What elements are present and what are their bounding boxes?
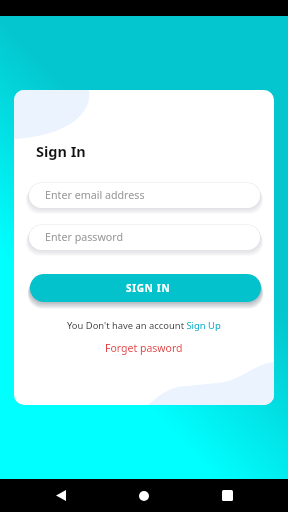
button[interactable]: SIGN IN xyxy=(30,274,261,302)
button[interactable]: You Don't have an account Sign Up xyxy=(67,319,221,332)
button[interactable]: Enter password xyxy=(29,225,260,250)
staticText: SIGN IN xyxy=(126,281,171,295)
button[interactable]: Recent apps xyxy=(206,484,248,507)
button[interactable]: Back xyxy=(40,484,81,507)
staticText: Enter password xyxy=(45,230,124,245)
button[interactable]: Forget pasword xyxy=(105,341,183,355)
button[interactable]: Enter email address xyxy=(29,183,260,208)
staticText: Sign In xyxy=(36,141,86,161)
staticText: You Don't have an account Sign Up xyxy=(67,319,221,332)
button[interactable]: Home xyxy=(123,484,165,507)
staticText: Enter email address xyxy=(45,188,145,203)
